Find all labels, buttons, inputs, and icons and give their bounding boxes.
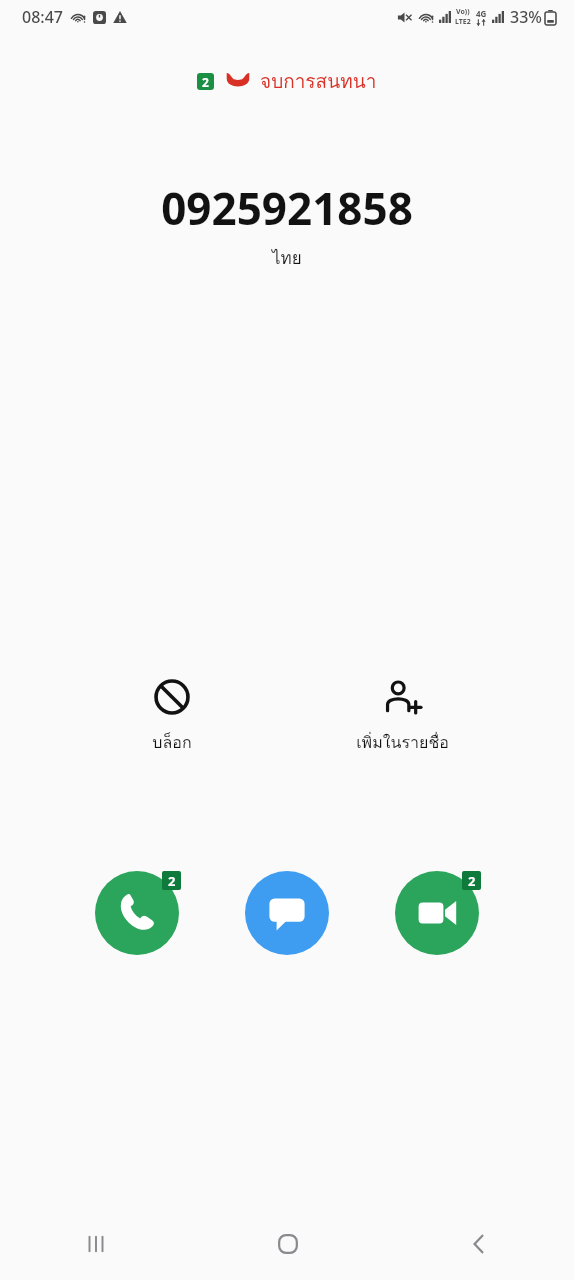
staticText: 2 (202, 74, 209, 90)
staticText: 08:47 (22, 6, 63, 28)
button[interactable]: Back (383, 1208, 574, 1280)
staticText: 2 (468, 872, 476, 890)
button[interactable]: Recents (0, 1208, 192, 1280)
staticText: จบการสนทนา (260, 66, 377, 96)
button[interactable]: Video call (391, 867, 483, 959)
button[interactable]: Block (112, 678, 232, 755)
staticText: เพิ่มในรายชื่อ (356, 730, 449, 755)
staticText: ไทย (272, 244, 302, 271)
staticText: LTE2 (455, 17, 471, 27)
staticText: บล็อก (152, 730, 192, 755)
button[interactable]: 2 (0, 66, 574, 96)
button[interactable]: Add to contacts (342, 678, 462, 755)
button[interactable]: Call (91, 867, 183, 959)
staticText: Vo)) (456, 7, 470, 17)
button[interactable]: Home (192, 1208, 383, 1280)
button[interactable]: Message (241, 867, 333, 959)
staticText: 0925921858 (161, 178, 413, 238)
staticText: 4G (476, 8, 487, 19)
staticText: 2 (168, 872, 176, 890)
staticText: 33% (510, 6, 542, 28)
